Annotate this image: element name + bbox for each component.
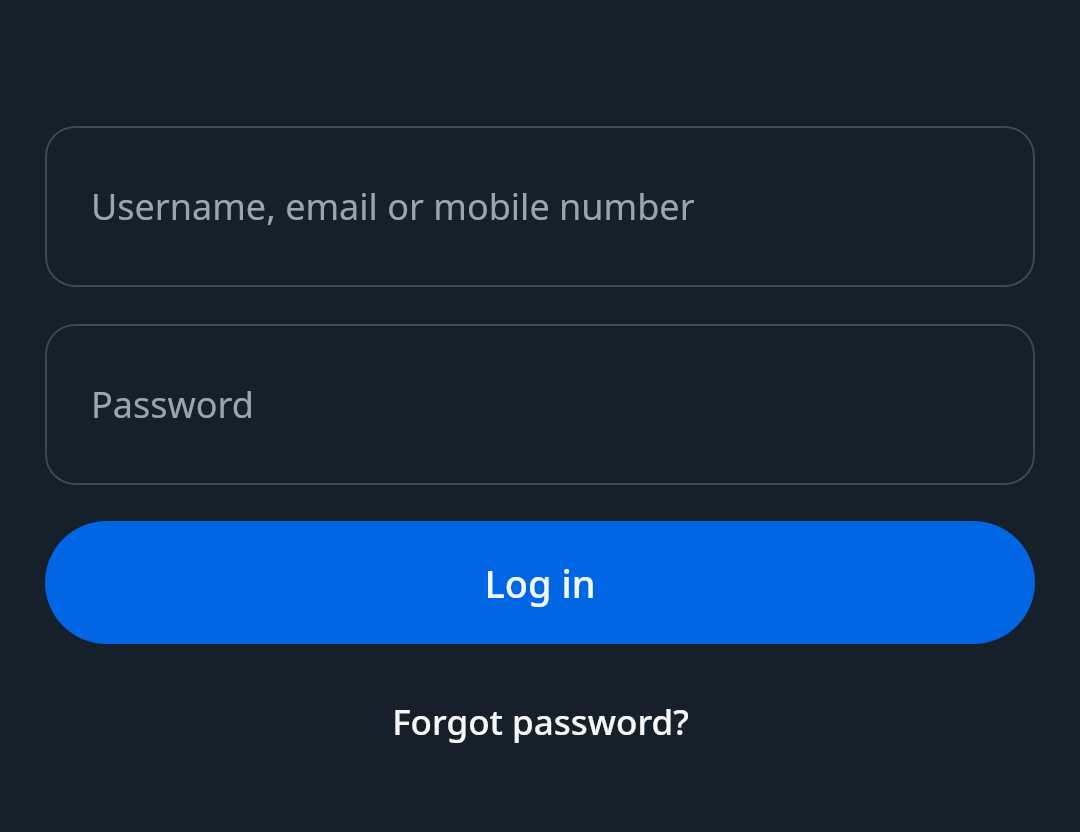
button[interactable]: Forgot password: [45, 682, 1035, 762]
button[interactable]: Password: [45, 324, 1035, 485]
button[interactable]: Username, email or mobile number: [45, 126, 1035, 287]
button[interactable]: Log in: [45, 521, 1035, 644]
staticText: Forgot password?: [392, 698, 689, 746]
staticText: Log in: [484, 557, 596, 609]
staticText: Password: [91, 380, 254, 429]
staticText: Username, email or mobile number: [91, 182, 695, 231]
